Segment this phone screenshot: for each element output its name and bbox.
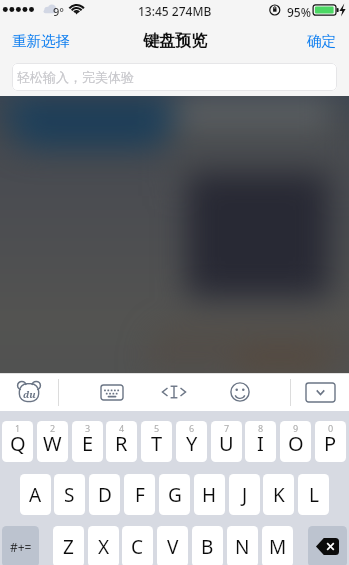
staticText: 7 [224, 422, 230, 434]
button[interactable]: Move cursor [152, 373, 196, 411]
button[interactable]: 确定 [299, 26, 349, 56]
staticText: D [98, 482, 112, 508]
button[interactable]: 9 [280, 421, 311, 462]
button[interactable]: 8 [245, 421, 276, 462]
staticText: T [151, 430, 163, 457]
button[interactable]: M [262, 526, 293, 565]
staticText: 确定 [307, 32, 336, 50]
staticText: #+= [10, 539, 32, 555]
button[interactable]: A [20, 474, 51, 515]
button[interactable]: 6 [176, 421, 207, 462]
button[interactable]: 1 [2, 421, 33, 462]
staticText: M [269, 534, 287, 560]
button[interactable]: 重新选择 [0, 26, 78, 56]
button[interactable]: V [157, 526, 188, 565]
button[interactable]: Keyboard layout [59, 373, 164, 411]
staticText: E [82, 430, 94, 457]
button[interactable]: #+= [2, 526, 39, 565]
staticText: 4 [119, 422, 125, 434]
button[interactable]: Backspace [308, 526, 347, 565]
staticText: V [167, 534, 179, 560]
button[interactable]: X [88, 526, 119, 565]
staticText: L [309, 482, 319, 508]
button[interactable]: Hide keyboard [291, 373, 349, 411]
button[interactable]: 0 [315, 421, 346, 462]
staticText: 2 [50, 422, 56, 434]
button[interactable]: N [227, 526, 258, 565]
staticText: Y [186, 430, 198, 457]
staticText: 8 [258, 422, 264, 434]
staticText: 重新选择 [12, 32, 70, 50]
button[interactable]: L [298, 474, 329, 515]
staticText: 0 [328, 422, 334, 434]
staticText: A [29, 482, 42, 508]
staticText: K [273, 482, 285, 508]
staticText: du [23, 388, 36, 401]
staticText: S [64, 482, 75, 508]
staticText: 13:45 274MB [138, 3, 212, 19]
staticText: Q [10, 430, 26, 457]
staticText: 95% [287, 4, 311, 20]
staticText: C [131, 534, 144, 560]
button[interactable]: K [263, 474, 294, 515]
staticText: U [219, 430, 234, 457]
staticText: X [98, 534, 110, 560]
staticText: 9 [293, 422, 299, 434]
staticText: 6 [189, 422, 195, 434]
staticText: F [135, 482, 145, 508]
button[interactable]: D [89, 474, 120, 515]
staticText: 5 [154, 422, 160, 434]
button[interactable]: F [124, 474, 155, 515]
staticText: P [324, 430, 337, 457]
button[interactable]: 轻松输入，完美体验 [12, 63, 337, 91]
staticText: J [242, 482, 248, 508]
button[interactable]: 4 [106, 421, 137, 462]
button[interactable]: 5 [141, 421, 172, 462]
button[interactable]: B [192, 526, 223, 565]
button[interactable]: Baidu input method [0, 373, 58, 411]
button[interactable]: C [122, 526, 153, 565]
button[interactable]: 2 [37, 421, 68, 462]
staticText: 3 [85, 422, 91, 434]
button[interactable]: H [194, 474, 225, 515]
button[interactable]: J [229, 474, 260, 515]
button[interactable]: S [54, 474, 85, 515]
staticText: B [201, 534, 214, 560]
staticText: 1 [15, 422, 21, 434]
staticText: 键盘预览 [143, 31, 207, 51]
staticText: G [168, 482, 182, 508]
staticText: 9° [53, 4, 64, 19]
button[interactable]: Z [53, 526, 84, 565]
staticText: I [257, 430, 264, 457]
staticText: N [235, 534, 250, 560]
button[interactable]: Emoji [212, 373, 267, 411]
button[interactable]: G [159, 474, 190, 515]
button[interactable]: 3 [72, 421, 103, 462]
staticText: H [202, 482, 217, 508]
staticText: W [43, 430, 62, 457]
staticText: Z [63, 534, 74, 560]
staticText: R [115, 430, 128, 457]
button[interactable]: 7 [211, 421, 242, 462]
staticText: 轻松输入，完美体验 [17, 69, 134, 85]
staticText: O [288, 430, 304, 457]
